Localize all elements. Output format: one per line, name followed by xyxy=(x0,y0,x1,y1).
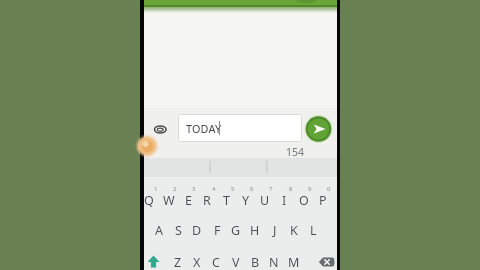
button[interactable]: Q xyxy=(139,191,159,209)
button[interactable] xyxy=(154,123,168,136)
staticText: Q xyxy=(144,192,154,209)
staticText: L xyxy=(310,222,317,239)
staticText: K xyxy=(290,222,298,239)
staticText: 7 xyxy=(269,185,273,193)
button[interactable]: 1 xyxy=(146,180,166,198)
button[interactable]: 9 xyxy=(300,180,320,198)
staticText: T xyxy=(223,192,230,209)
staticText: E xyxy=(185,192,192,209)
staticText: R xyxy=(203,192,211,209)
staticText: M xyxy=(288,254,300,270)
staticText: S xyxy=(175,222,182,239)
button[interactable]: G xyxy=(226,221,246,239)
button[interactable]: O xyxy=(294,191,314,209)
button[interactable]: J xyxy=(265,221,285,239)
staticText: TODAY xyxy=(186,121,222,136)
staticText: X xyxy=(193,254,201,270)
button[interactable]: M xyxy=(284,253,304,270)
staticText: 0 xyxy=(327,185,331,193)
button[interactable]: L xyxy=(303,221,323,239)
button[interactable]: 6 xyxy=(242,180,262,198)
button[interactable]: D xyxy=(187,221,207,239)
staticText: G xyxy=(231,222,241,239)
button[interactable]: 2 xyxy=(165,180,185,198)
button[interactable]: B xyxy=(245,253,265,270)
staticText: D xyxy=(192,222,202,239)
button[interactable]: 4 xyxy=(204,180,224,198)
button[interactable]: 7 xyxy=(261,180,281,198)
button[interactable]: X xyxy=(187,253,207,270)
staticText: J xyxy=(273,222,277,239)
button[interactable]: T xyxy=(216,191,236,209)
button[interactable]: W xyxy=(159,191,179,209)
staticText: H xyxy=(250,222,260,239)
staticText: 2 xyxy=(173,185,177,193)
button[interactable]: P xyxy=(313,191,333,209)
staticText: V xyxy=(232,254,240,270)
button[interactable]: TODAY xyxy=(178,114,302,142)
staticText: I xyxy=(282,192,287,209)
button[interactable]: K xyxy=(284,221,304,239)
button[interactable]: C xyxy=(206,253,226,270)
button[interactable]: V xyxy=(226,253,246,270)
staticText: P xyxy=(319,192,327,209)
button[interactable]: U xyxy=(255,191,275,209)
staticText: 8 xyxy=(289,185,293,193)
staticText: C xyxy=(212,254,220,270)
staticText: N xyxy=(269,254,279,270)
staticText: 154 xyxy=(286,145,305,159)
staticText: 1 xyxy=(154,185,158,193)
button[interactable]: I xyxy=(274,191,294,209)
button[interactable]: R xyxy=(197,191,217,209)
button[interactable]: N xyxy=(264,253,284,270)
staticText: F xyxy=(214,222,221,239)
button[interactable]: F xyxy=(207,221,227,239)
staticText: U xyxy=(260,192,270,209)
staticText: 5 xyxy=(231,185,235,193)
staticText: 4 xyxy=(212,185,216,193)
button[interactable]: 3 xyxy=(184,180,204,198)
button[interactable]: 8 xyxy=(281,180,301,198)
button[interactable]: E xyxy=(178,191,198,209)
staticText: 3 xyxy=(192,185,196,193)
button[interactable]: Z xyxy=(168,253,188,270)
button[interactable]: H xyxy=(245,221,265,239)
staticText: W xyxy=(163,192,175,209)
button[interactable]: S xyxy=(168,221,188,239)
button[interactable]: A xyxy=(149,221,169,239)
button[interactable] xyxy=(318,256,336,268)
staticText: 6 xyxy=(250,185,254,193)
staticText: 9 xyxy=(308,185,312,193)
button[interactable]: Y xyxy=(236,191,256,209)
staticText: Z xyxy=(174,254,182,270)
button[interactable] xyxy=(147,255,161,269)
button[interactable]: 5 xyxy=(223,180,243,198)
staticText: O xyxy=(299,192,309,209)
staticText: Y xyxy=(242,192,250,209)
staticText: A xyxy=(155,222,163,239)
staticText: B xyxy=(251,254,260,270)
button[interactable] xyxy=(304,114,334,144)
button[interactable]: 0 xyxy=(319,180,339,198)
